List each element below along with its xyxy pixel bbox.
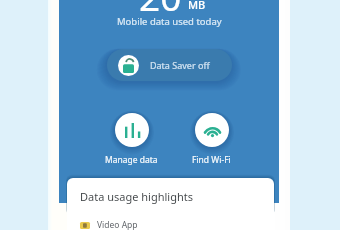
staticText: 20 [139, 0, 182, 21]
button[interactable]: Video App [67, 219, 274, 230]
button[interactable]: Manage data [91, 113, 171, 166]
staticText: Data Saver off [150, 59, 210, 71]
staticText: Video App [97, 219, 138, 230]
staticText: Manage data [105, 154, 158, 166]
staticText: Mobile data used today [117, 15, 222, 28]
staticText: MB [188, 0, 206, 12]
staticText: Data usage highlights [80, 189, 193, 204]
button[interactable]: Data Saver off [107, 49, 232, 81]
button[interactable]: Find Wi-Fi [171, 113, 251, 166]
staticText: Find Wi-Fi [192, 154, 231, 166]
